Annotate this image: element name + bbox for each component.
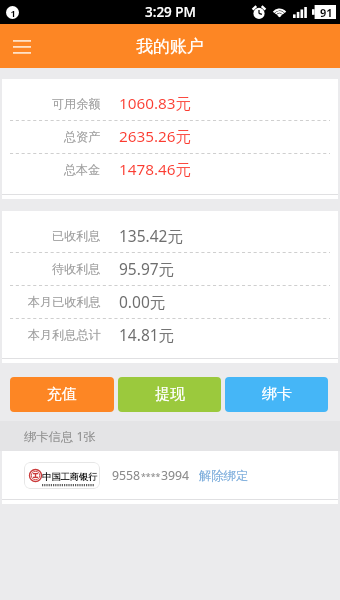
staticText: 已收利息 <box>52 228 101 243</box>
button[interactable]: Menu <box>5 29 39 63</box>
button[interactable]: 充值 <box>10 377 114 412</box>
button[interactable]: 提现 <box>118 377 221 412</box>
staticText: **** <box>141 471 161 483</box>
staticText: 1 <box>10 7 16 19</box>
staticText: 1060.83元 <box>119 93 191 114</box>
staticText: 中国工商银行 <box>42 471 98 483</box>
staticText: 我的账户 <box>136 36 204 57</box>
staticText: 本月利息总计 <box>28 327 101 342</box>
staticText: 14.81元 <box>119 324 175 345</box>
staticText: 95.97元 <box>119 258 175 279</box>
staticText: 可用余额 <box>52 96 101 111</box>
staticText: 0.00元 <box>119 291 166 312</box>
staticText: 9558 <box>112 467 141 484</box>
staticText: 绑卡信息 1张 <box>24 428 96 445</box>
staticText: 待收利息 <box>52 261 101 276</box>
staticText: 135.42元 <box>119 225 183 246</box>
staticText: 总本金 <box>64 162 101 177</box>
staticText: 2635.26元 <box>119 126 191 147</box>
staticText: 绑卡 <box>262 385 292 404</box>
button[interactable]: 中国工商银行 <box>24 451 338 499</box>
staticText: 总资产 <box>64 129 101 144</box>
button[interactable]: 解除绑定 <box>199 468 249 483</box>
staticText: 充值 <box>47 385 77 404</box>
staticText: 3:29 PM <box>145 3 196 21</box>
staticText: 3994 <box>161 467 190 484</box>
button[interactable]: 绑卡 <box>225 377 328 412</box>
staticText: 1478.46元 <box>119 159 191 180</box>
staticText: 提现 <box>155 385 185 404</box>
staticText: 91 <box>320 5 333 19</box>
staticText: 本月已收利息 <box>28 294 101 309</box>
